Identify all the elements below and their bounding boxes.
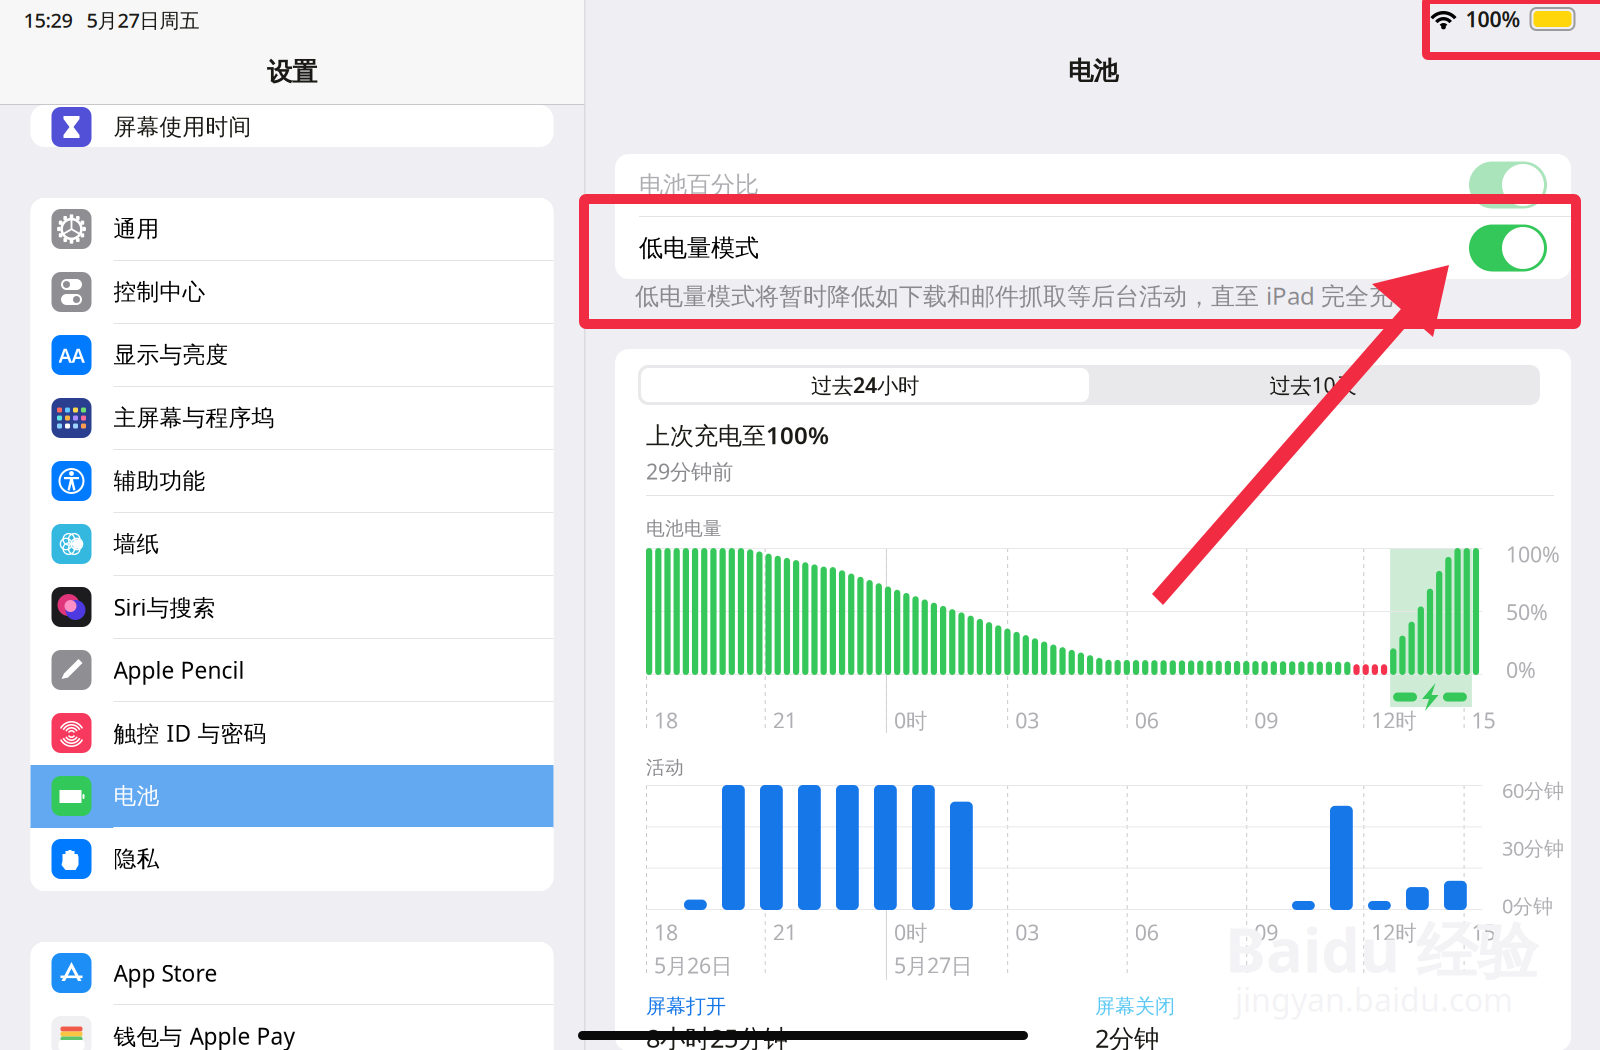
staticText: 2分钟 bbox=[1095, 1021, 1159, 1050]
staticText: 屏幕使用时间 bbox=[113, 113, 251, 141]
staticText: 18 bbox=[654, 918, 678, 946]
button[interactable]: 过去24小时 bbox=[641, 368, 1089, 402]
staticText: 0% bbox=[1506, 656, 1536, 684]
staticText: Siri与搜索 bbox=[113, 592, 215, 622]
staticText: App Store bbox=[113, 958, 217, 988]
staticText: 触控 ID 与密码 bbox=[113, 718, 266, 748]
staticText: 50% bbox=[1506, 598, 1548, 626]
staticText: 03 bbox=[1015, 918, 1039, 946]
staticText: 21 bbox=[773, 918, 797, 946]
staticText: 主屏幕与程序坞 bbox=[113, 404, 274, 432]
staticText: 屏幕关闭 bbox=[1095, 994, 1175, 1019]
staticText: 15 bbox=[1472, 918, 1496, 946]
staticText: 电池百分比 bbox=[639, 170, 759, 200]
button[interactable]: 电池 bbox=[30, 765, 553, 828]
button[interactable]: AA bbox=[30, 324, 553, 387]
staticText: 0时 bbox=[894, 918, 927, 946]
staticText: 03 bbox=[1015, 706, 1039, 734]
staticText: 18 bbox=[654, 706, 678, 734]
staticText: 隐私 bbox=[113, 845, 159, 873]
staticText: 09 bbox=[1254, 706, 1278, 734]
staticText: 09 bbox=[1254, 918, 1278, 946]
button[interactable]: Apple Pencil bbox=[30, 639, 553, 702]
staticText: 8小时25分钟 bbox=[646, 1021, 788, 1050]
button[interactable]: 通用 bbox=[30, 198, 553, 261]
staticText: 电池电量 bbox=[646, 517, 722, 540]
staticText: Baidu 经验 bbox=[1225, 908, 1538, 990]
staticText: 60分钟 bbox=[1502, 777, 1564, 804]
staticText: 上次充电至100% bbox=[646, 419, 829, 451]
staticText: 100% bbox=[1506, 540, 1560, 568]
staticText: jingyan.baidu.com bbox=[1235, 978, 1513, 1020]
button[interactable]: 低电量模式 bbox=[615, 217, 1571, 279]
button[interactable]: App Store bbox=[30, 942, 553, 1005]
staticText: 15:29 bbox=[23, 7, 72, 33]
button[interactable]: 控制中心 bbox=[30, 261, 553, 324]
staticText: AA bbox=[58, 342, 84, 368]
button[interactable]: 触控 ID 与密码 bbox=[30, 702, 553, 765]
button[interactable]: 墙纸 bbox=[30, 513, 553, 576]
staticText: 过去10天 bbox=[1269, 371, 1356, 399]
staticText: 06 bbox=[1135, 706, 1159, 734]
staticText: 12时 bbox=[1371, 706, 1416, 734]
staticText: 06 bbox=[1135, 918, 1159, 946]
staticText: 5月26日 bbox=[654, 951, 732, 979]
button[interactable]: Siri与搜索 bbox=[30, 576, 553, 639]
staticText: 21 bbox=[773, 706, 797, 734]
staticText: 钱包与 Apple Pay bbox=[113, 1021, 295, 1050]
staticText: 0时 bbox=[894, 706, 927, 734]
button[interactable]: 钱包与 Apple Pay bbox=[30, 1005, 553, 1050]
staticText: 显示与亮度 bbox=[113, 341, 228, 369]
staticText: 屏幕打开 bbox=[646, 994, 726, 1019]
staticText: 辅助功能 bbox=[113, 467, 205, 495]
staticText: 29分钟前 bbox=[646, 457, 733, 485]
button[interactable]: 主屏幕与程序坞 bbox=[30, 387, 553, 450]
button[interactable]: 电池百分比 bbox=[615, 154, 1571, 216]
staticText: 5月27日 bbox=[894, 951, 972, 979]
staticText: 低电量模式 bbox=[639, 233, 759, 263]
staticText: 电池 bbox=[113, 782, 159, 810]
staticText: 通用 bbox=[113, 215, 159, 243]
staticText: 5月27日周五 bbox=[86, 7, 199, 33]
staticText: 过去24小时 bbox=[811, 371, 919, 399]
button[interactable]: 辅助功能 bbox=[30, 450, 553, 513]
staticText: 30分钟 bbox=[1502, 835, 1564, 861]
staticText: 15 bbox=[1472, 706, 1496, 734]
staticText: 活动 bbox=[646, 756, 684, 779]
staticText: 0分钟 bbox=[1502, 892, 1553, 919]
staticText: 墙纸 bbox=[113, 530, 159, 558]
staticText: 设置 bbox=[267, 56, 317, 87]
staticText: Apple Pencil bbox=[113, 655, 244, 685]
button[interactable]: 隐私 bbox=[30, 828, 553, 891]
staticText: 100% bbox=[1465, 5, 1520, 33]
staticText: 低电量模式将暂时降低如下载和邮件抓取等后台活动，直至 iPad 完全充电。 bbox=[635, 280, 1441, 311]
staticText: 电池 bbox=[1068, 55, 1118, 86]
staticText: 控制中心 bbox=[113, 278, 205, 306]
button[interactable]: 过去10天 bbox=[1089, 368, 1537, 402]
staticText: 12时 bbox=[1371, 918, 1416, 946]
